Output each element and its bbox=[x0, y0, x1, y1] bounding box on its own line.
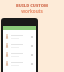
button[interactable]: More options bbox=[30, 35, 34, 39]
button[interactable]: More options bbox=[3, 32, 36, 41]
staticText: BUILD CUSTOM bbox=[16, 3, 48, 9]
button[interactable]: More options bbox=[30, 53, 34, 57]
button[interactable]: More options bbox=[30, 44, 34, 48]
button[interactable]: More options bbox=[30, 62, 34, 66]
staticText: workouts bbox=[21, 8, 43, 14]
button[interactable]: More options bbox=[3, 59, 36, 68]
button[interactable]: More options bbox=[3, 50, 36, 59]
button[interactable]: More options bbox=[3, 41, 36, 50]
